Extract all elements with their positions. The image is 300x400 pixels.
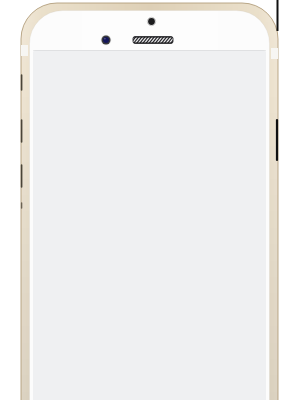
button[interactable]: Phone device mockup bbox=[0, 0, 300, 400]
